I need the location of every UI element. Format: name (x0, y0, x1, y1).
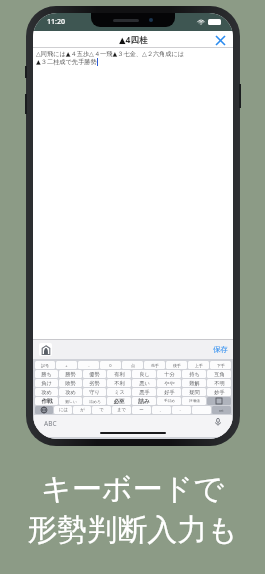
staticText: ABC (44, 419, 57, 428)
button[interactable]: 十分 (157, 370, 181, 378)
button[interactable]: 負け (35, 379, 58, 387)
staticText: 十分 (164, 371, 175, 378)
staticText: 勝勢 (65, 371, 76, 378)
button[interactable]: Delete (207, 397, 231, 405)
button[interactable]: 先手 (144, 361, 165, 369)
button[interactable]: 下手 (210, 361, 231, 369)
staticText: 先手 (151, 363, 159, 368)
staticText: 上手 (195, 363, 203, 368)
button[interactable]: 悪手 (132, 388, 156, 396)
button[interactable]: 互角 (207, 370, 231, 378)
button[interactable]: 。 (172, 406, 191, 414)
staticText: 難解 (189, 380, 200, 387)
staticText: 有利 (114, 371, 125, 378)
button[interactable]: + (56, 361, 77, 369)
staticText: 敗勢 (65, 380, 76, 387)
staticText: 攻め (41, 389, 52, 396)
button[interactable]: ret (212, 406, 231, 414)
button[interactable]: - (78, 361, 99, 369)
staticText: 後手 (173, 363, 181, 368)
button[interactable]: 持ち (182, 370, 206, 378)
button[interactable]: 不利 (107, 379, 131, 387)
button[interactable]: 評価値 (182, 397, 206, 405)
staticText: ミス (114, 389, 125, 396)
staticText: - (88, 363, 90, 368)
button[interactable]: 必至 (107, 397, 131, 405)
staticText: 11:20 (47, 17, 65, 27)
staticText: 、 (159, 407, 164, 413)
staticText: 不利 (114, 380, 125, 387)
button[interactable]: ー (132, 406, 151, 414)
staticText: 詰めろ (89, 399, 101, 404)
staticText: で (99, 407, 104, 413)
staticText: 守り (89, 389, 100, 396)
button[interactable]: 良し (132, 370, 156, 378)
staticText: 優勢 (89, 371, 100, 378)
button[interactable]: 妙手 (207, 388, 231, 396)
button[interactable]: Shogi piece (39, 343, 52, 356)
button[interactable]: 保存 (213, 345, 228, 354)
staticText: 妙手 (214, 389, 225, 396)
button[interactable]: 攻め (35, 388, 58, 396)
button[interactable]: で (92, 406, 111, 414)
button[interactable]: が (73, 406, 91, 414)
staticText: ret (219, 408, 224, 413)
button[interactable]: 難しい (59, 397, 82, 405)
button[interactable]: 有利 (107, 370, 131, 378)
button[interactable]: まで (112, 406, 131, 414)
button[interactable]: 手詰め (157, 397, 181, 405)
button[interactable]: ABC (44, 419, 57, 428)
button[interactable]: 記号 (35, 361, 55, 369)
staticText: やや (164, 380, 175, 387)
button[interactable]: 上手 (188, 361, 209, 369)
button[interactable]: 勝ち (35, 370, 58, 378)
staticText: 劣勢 (89, 380, 100, 387)
staticText: 悪手 (139, 389, 150, 396)
button[interactable]: 作戦 (35, 397, 58, 405)
button[interactable]: 疑問 (182, 388, 206, 396)
staticText: 攻め (65, 389, 76, 396)
button[interactable]: 好手 (157, 388, 181, 396)
staticText: 0 (109, 363, 112, 368)
staticText: + (65, 363, 68, 368)
button[interactable]: 攻め (59, 388, 82, 396)
staticText: 記号 (41, 363, 49, 368)
button[interactable]: やや (157, 379, 181, 387)
button[interactable]: Close (213, 33, 227, 47)
button[interactable]: 勝勢 (59, 370, 82, 378)
staticText: 好手 (164, 389, 175, 396)
staticText: 不明 (214, 380, 225, 387)
staticText: 疑問 (189, 389, 200, 396)
button[interactable]: 難解 (182, 379, 206, 387)
button[interactable]: 敗勢 (59, 379, 82, 387)
button[interactable]: 悪い (132, 379, 156, 387)
staticText: 負け (41, 380, 52, 387)
button[interactable]: 後手 (166, 361, 187, 369)
button[interactable]: 0 (100, 361, 121, 369)
button[interactable]: ミス (107, 388, 131, 396)
staticText: 悪い (139, 380, 150, 387)
button[interactable]: Dictation (213, 417, 223, 427)
button[interactable] (192, 406, 211, 414)
button[interactable]: 優勢 (83, 370, 106, 378)
staticText: 難しい (65, 399, 77, 404)
staticText: 必至 (113, 398, 125, 405)
staticText: ▲4四桂 (119, 34, 148, 46)
staticText: 点 (131, 363, 135, 368)
staticText: には (59, 407, 68, 413)
button[interactable]: 守り (83, 388, 106, 396)
button[interactable]: 詰み (132, 397, 156, 405)
staticText: 互角 (214, 371, 225, 378)
staticText: まで (117, 407, 126, 413)
staticText: が (80, 407, 85, 413)
button[interactable]: 不明 (207, 379, 231, 387)
button[interactable]: 、 (152, 406, 171, 414)
staticText: ー (139, 407, 144, 413)
button[interactable]: Switch keyboard (35, 406, 53, 414)
staticText: ▲３二桂成で先手勝勢 (36, 58, 97, 66)
button[interactable]: には (54, 406, 72, 414)
staticText: 詰み (138, 398, 150, 405)
button[interactable]: 点 (122, 361, 143, 369)
button[interactable]: 詰めろ (83, 397, 106, 405)
button[interactable]: 劣勢 (83, 379, 106, 387)
